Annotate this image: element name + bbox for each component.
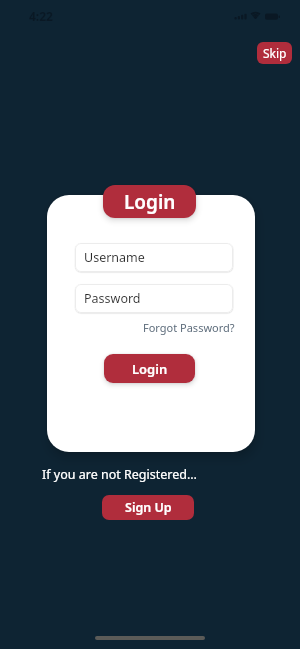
staticText: If you are not Registered… [42, 466, 197, 483]
button[interactable]: Forgot Password? [75, 319, 235, 335]
staticText: Forgot Password? [143, 320, 235, 335]
button[interactable]: Username [75, 243, 233, 272]
button[interactable]: Sign Up [102, 495, 194, 520]
button[interactable]: Password [75, 284, 233, 313]
staticText: Skip [263, 45, 287, 61]
staticText: Sign Up [125, 499, 172, 516]
button[interactable]: Skip [257, 42, 292, 64]
button[interactable]: Login [103, 185, 196, 218]
staticText: Login [124, 189, 176, 215]
staticText: Login [132, 360, 168, 378]
staticText: Password [84, 290, 141, 307]
button[interactable]: Login [104, 354, 195, 383]
staticText: Username [84, 249, 145, 266]
staticText: 4:22 [29, 8, 53, 24]
